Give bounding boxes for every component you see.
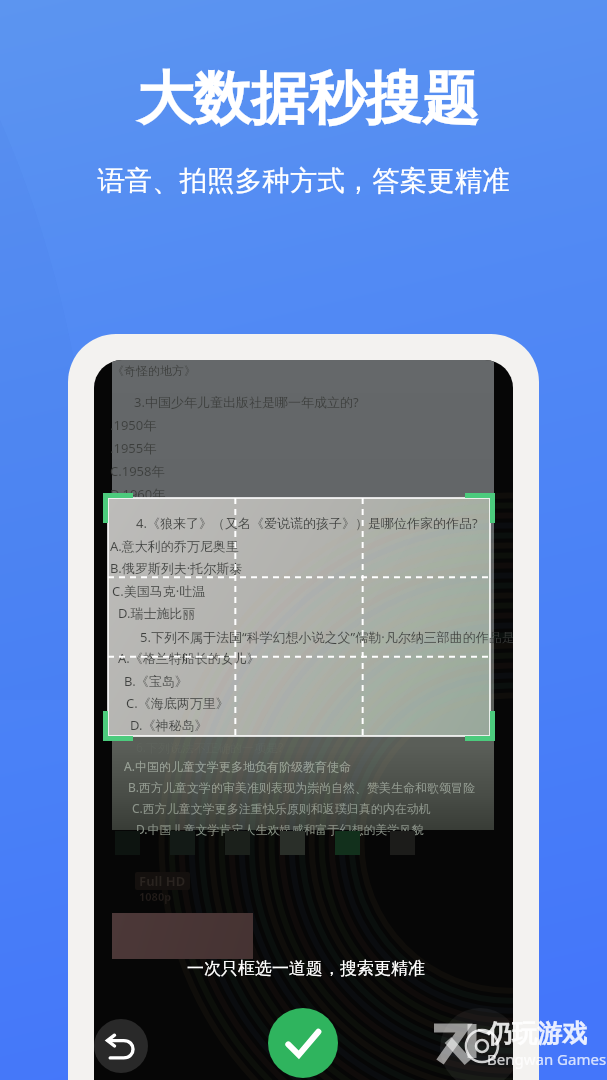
staticText: D.瑞士施比丽 (118, 604, 196, 622)
staticText: A.意大利的乔万尼奥里 (110, 537, 239, 555)
staticText: 《奇怪的地方》 (112, 363, 196, 378)
staticText: 仍玩游戏 (487, 1018, 587, 1049)
staticText: D.《神秘岛》 (130, 716, 208, 734)
staticText: Bengwan Games (487, 1049, 607, 1069)
staticText: A.中国的儿童文学更多地负有阶级教育使命 (124, 758, 351, 774)
staticText: C.美国马克·吐温 (112, 582, 206, 600)
staticText: D.中国儿童文学肯定人生欢娱感和富于幻想的美学风貌 (136, 821, 424, 837)
staticText: B.西方儿童文学的审美准则表现为崇尚自然、赞美生命和歌颂冒险 (128, 779, 475, 795)
staticText: 一次只框选一道题，搜索更精准 (187, 958, 425, 979)
staticText: 4.《狼来了》（又名《爱说谎的孩子》）是哪位作家的作品? (136, 514, 478, 532)
staticText: 3.中国少年儿童出版社是哪一年成立的? (134, 393, 359, 411)
staticText: D.1960年 (110, 485, 166, 503)
button[interactable]: Undo (94, 1019, 148, 1073)
staticText: 语音、拍照多种方式，答案更精准 (97, 164, 510, 199)
staticText: .1950年 (110, 416, 157, 434)
staticText: 5.下列不属于法国“科学幻想小说之父”儒勒·凡尔纳三部曲的作品是? (140, 628, 513, 646)
staticText: Full HD (139, 872, 186, 890)
staticText: B.《宝岛》 (124, 672, 188, 690)
staticText: 1080p (139, 889, 172, 904)
staticText: 大数据秒搜题 (137, 63, 479, 135)
staticText: C.《海底两万里》 (126, 694, 229, 712)
staticText: B.俄罗斯列夫·托尔斯泰 (110, 559, 243, 577)
button[interactable]: Confirm (268, 1008, 338, 1078)
staticText: .1955年 (110, 439, 157, 457)
staticText: C.1958年 (110, 462, 165, 480)
staticText: A.《格兰特船长的女儿》 (118, 649, 260, 667)
staticText: C.西方儿童文学更多注重快乐原则和返璞归真的内在动机 (132, 800, 431, 816)
